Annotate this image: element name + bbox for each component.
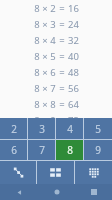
staticText: 56 [68, 82, 79, 95]
staticText: 8 [67, 143, 73, 157]
button[interactable]: Random order [0, 161, 36, 184]
staticText: 4 [67, 122, 73, 136]
staticText: 9 [50, 114, 56, 118]
button[interactable]: 3 [28, 118, 55, 139]
staticText: 3 [50, 18, 56, 31]
staticText: × [42, 2, 48, 15]
staticText: × [42, 98, 48, 111]
button[interactable]: 6 [0, 140, 27, 160]
button[interactable]: Back [0, 184, 38, 200]
staticText: 8 [34, 2, 40, 15]
staticText: 2 [50, 2, 56, 15]
staticText: 48 [68, 66, 79, 79]
staticText: × [42, 82, 48, 95]
button[interactable]: Card view [37, 161, 74, 184]
staticText: 5 [95, 122, 101, 136]
staticText: = [59, 82, 65, 95]
button[interactable]: 5 [84, 118, 112, 139]
staticText: 7 [50, 82, 56, 95]
button[interactable]: Home [38, 184, 75, 200]
button[interactable]: 2 [0, 118, 27, 139]
staticText: 5 [50, 50, 56, 63]
staticText: 6 [50, 66, 56, 79]
button[interactable]: Recents [75, 184, 112, 200]
staticText: × [42, 50, 48, 63]
staticText: 8 [34, 66, 40, 79]
staticText: 7 [39, 143, 45, 157]
staticText: 8 [34, 50, 40, 63]
staticText: 2 [11, 122, 17, 136]
staticText: 6 [11, 143, 17, 157]
staticText: = [59, 2, 65, 15]
staticText: 3 [39, 122, 45, 136]
button[interactable]: 9 [84, 140, 112, 160]
staticText: 40 [68, 50, 79, 63]
staticText: = [59, 50, 65, 63]
staticText: = [59, 18, 65, 31]
staticText: 72 [68, 114, 79, 118]
staticText: 64 [68, 98, 79, 111]
staticText: 4 [50, 34, 56, 47]
button[interactable]: 8 [56, 140, 83, 160]
staticText: × [42, 66, 48, 79]
staticText: = [59, 34, 65, 47]
staticText: × [42, 34, 48, 47]
staticText: 16 [68, 2, 79, 15]
button[interactable]: Full keypad [75, 161, 112, 184]
staticText: 24 [68, 18, 79, 31]
staticText: × [42, 18, 48, 31]
staticText: = [59, 98, 65, 111]
button[interactable]: 4 [56, 118, 83, 139]
staticText: 8 [34, 82, 40, 95]
staticText: 8 [34, 34, 40, 47]
staticText: 8 [50, 98, 56, 111]
staticText: 8 [34, 114, 40, 118]
staticText: 8 [34, 98, 40, 111]
staticText: = [59, 66, 65, 79]
staticText: 8 [34, 18, 40, 31]
staticText: 32 [68, 34, 79, 47]
button[interactable]: 7 [28, 140, 55, 160]
staticText: 9 [95, 143, 101, 157]
